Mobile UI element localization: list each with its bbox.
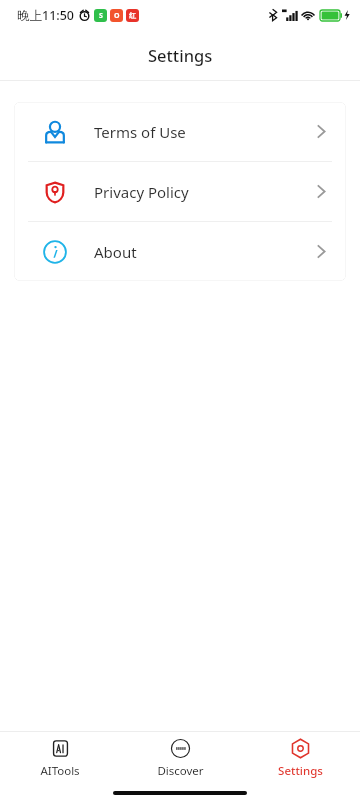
staticText: Terms of Use <box>94 122 186 142</box>
staticText: Discover <box>157 763 204 779</box>
staticText: 红 <box>129 11 136 20</box>
staticText: AITools <box>40 763 80 779</box>
button[interactable]: Terms of Use <box>14 102 346 161</box>
button[interactable]: Discover <box>120 732 240 784</box>
button[interactable]: About <box>14 222 346 281</box>
staticText: 晚上11:50 <box>17 7 75 24</box>
button[interactable]: AITools <box>0 732 120 784</box>
staticText: O <box>114 11 120 21</box>
button[interactable]: Privacy Policy <box>14 162 346 221</box>
staticText: Privacy Policy <box>94 182 189 202</box>
staticText: Settings <box>148 44 213 66</box>
staticText: Settings <box>278 763 323 779</box>
staticText: S <box>99 11 103 21</box>
staticText: About <box>94 242 137 262</box>
button[interactable]: Settings <box>240 732 360 784</box>
